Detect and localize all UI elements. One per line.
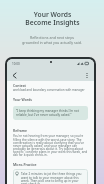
staticText: 10:00 [12,62,20,66]
staticText: Reflections and next steps grounded in w… [22,35,82,45]
staticText: Reframe [13,128,28,133]
staticText: Micro-Practice [13,162,37,167]
staticText: “I keep thinking my manager thinks I'm n… [16,109,85,117]
staticText: You're not hearing from your manager, so… [13,134,88,157]
staticText: Context [13,83,26,88]
button[interactable]: Back [9,70,19,80]
staticText: Your Words Become Insights [25,10,80,27]
button[interactable]: More options [82,70,92,80]
staticText: Your Words [13,97,32,102]
staticText: Take 2 minutes to jot the three things y… [21,172,85,184]
staticText: workload and boundary conversation with … [13,88,85,92]
